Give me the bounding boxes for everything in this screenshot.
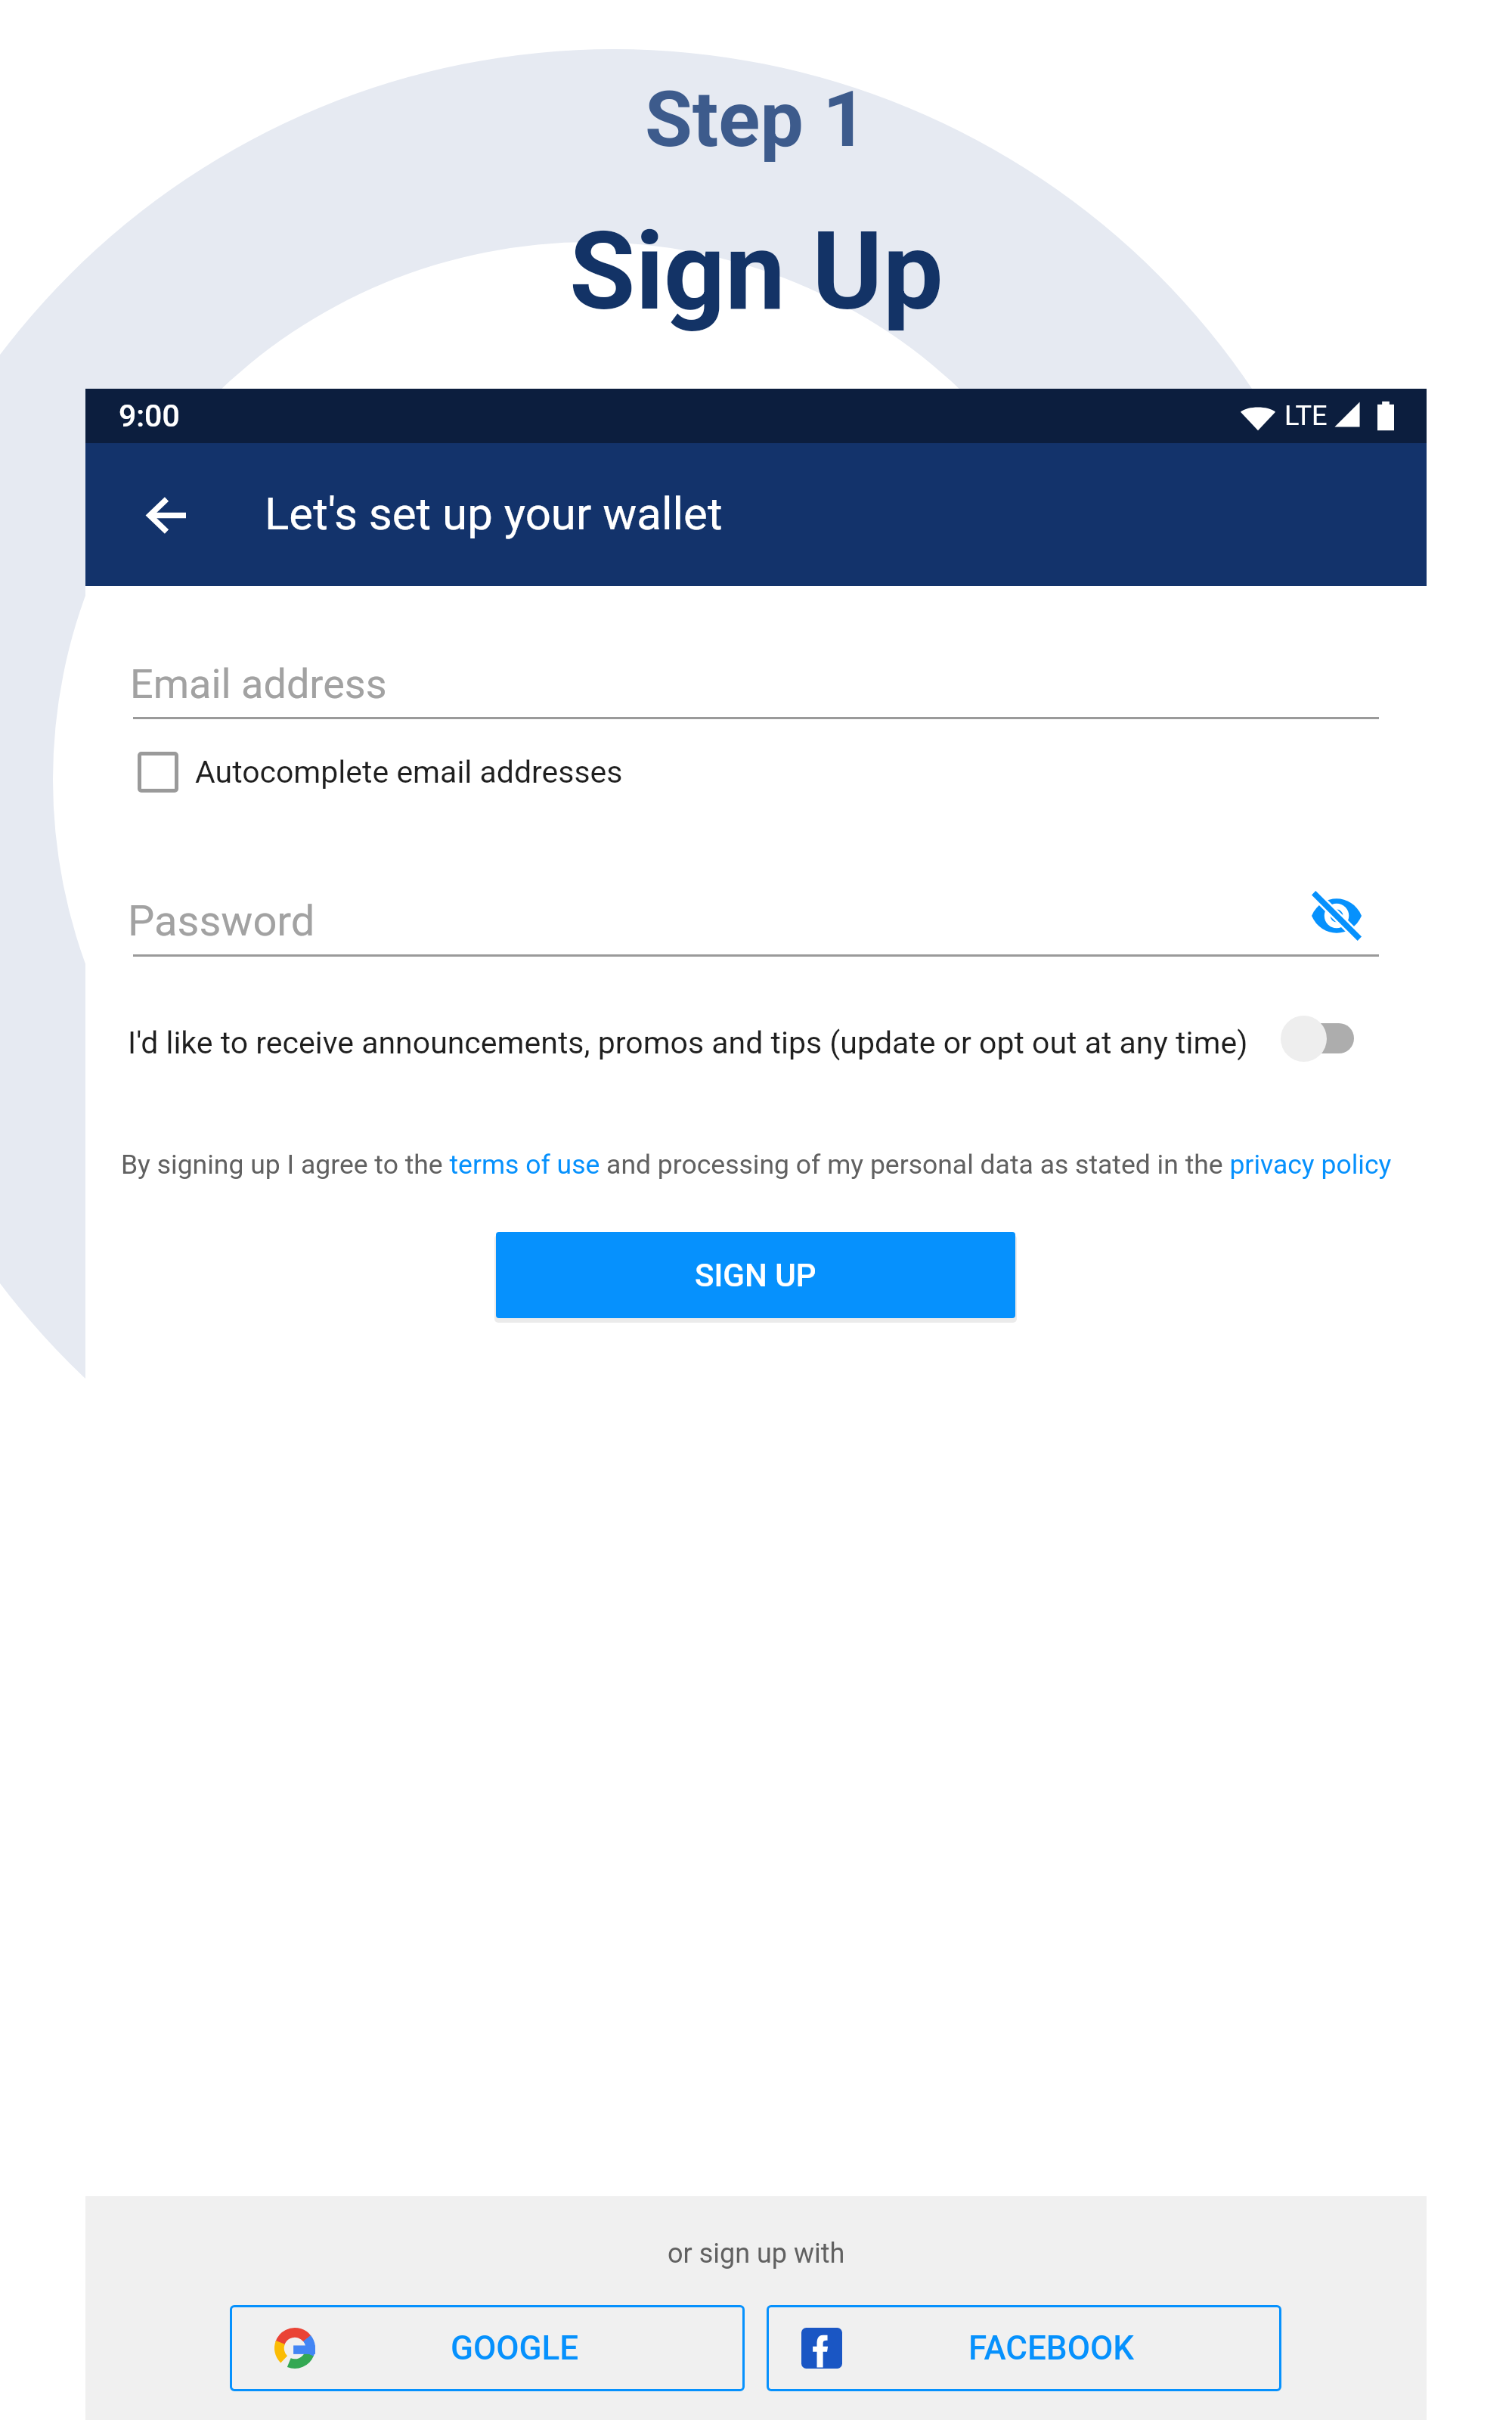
staticText: Step 1 <box>645 74 867 165</box>
staticText: SIGN UP <box>695 1257 816 1294</box>
staticText: FACEBOOK <box>968 2328 1135 2368</box>
staticText: Email address <box>130 660 387 708</box>
button[interactable]: SIGN UP <box>496 1232 1015 1318</box>
staticText: Let's set up your wallet <box>265 487 723 540</box>
staticText: Sign Up <box>569 209 943 334</box>
staticText: LTE <box>1284 400 1328 432</box>
button[interactable] <box>1256 1008 1362 1069</box>
staticText: or sign up with <box>668 2238 845 2270</box>
staticText: Autocomplete email addresses <box>195 754 623 790</box>
button[interactable]: Autocomplete email addresses <box>138 742 623 802</box>
button[interactable]: FACEBOOK <box>767 2305 1281 2391</box>
button[interactable]: GOOGLE <box>230 2305 745 2391</box>
staticText: 9:00 <box>119 398 180 434</box>
staticText: By signing up I agree to the terms of us… <box>121 1149 1392 1181</box>
staticText: I'd like to receive announcements, promo… <box>128 1025 1248 1061</box>
button[interactable]: Back <box>125 473 208 557</box>
staticText: Password <box>128 896 315 946</box>
staticText: GOOGLE <box>451 2328 579 2368</box>
button[interactable]: Show password <box>1295 874 1378 957</box>
